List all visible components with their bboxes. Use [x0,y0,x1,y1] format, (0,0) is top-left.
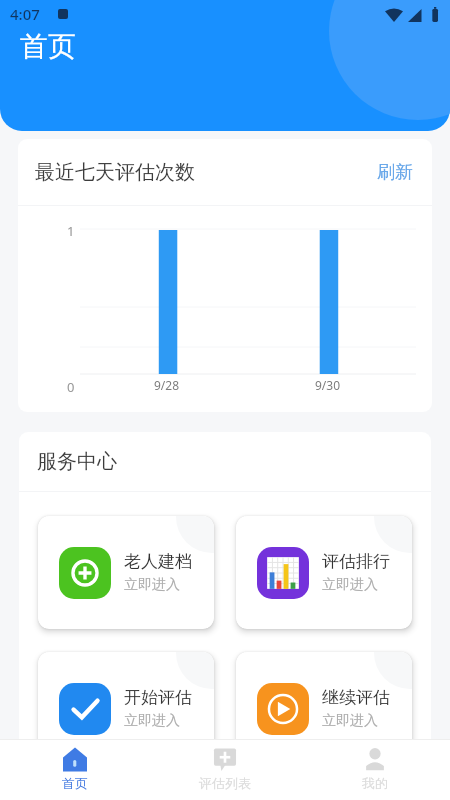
button[interactable]: 开始评估 [38,652,214,765]
staticText: 立即进入 [322,712,378,730]
staticText: 9/28 [154,377,180,393]
staticText: 开始评估 [124,687,192,708]
staticText: 老人建档 [124,551,192,572]
staticText: 最近七天评估次数 [35,160,195,185]
staticText: 继续评估 [322,687,390,708]
staticText: 立即进入 [124,712,180,730]
button[interactable]: 评估排行 [236,516,412,629]
staticText: 我的 [362,775,388,791]
staticText: 刷新 [377,161,413,184]
button[interactable]: 评估列表 [150,740,300,800]
staticText: 评估列表 [199,775,251,791]
staticText: 首页 [20,29,76,64]
staticText: 立即进入 [322,576,378,594]
staticText: 1 [67,222,75,240]
staticText: 9/30 [315,377,341,393]
button[interactable]: 继续评估 [236,652,412,765]
button[interactable]: 老人建档 [38,516,214,629]
staticText: 首页 [62,775,88,791]
staticText: 立即进入 [124,576,180,594]
staticText: 4:07 [10,4,40,24]
button[interactable]: 首页 [0,740,150,800]
button[interactable]: 我的 [300,740,450,800]
staticText: 0 [67,378,75,396]
staticText: 评估排行 [322,551,390,572]
staticText: 服务中心 [37,449,117,474]
button[interactable]: 刷新 [377,161,413,184]
